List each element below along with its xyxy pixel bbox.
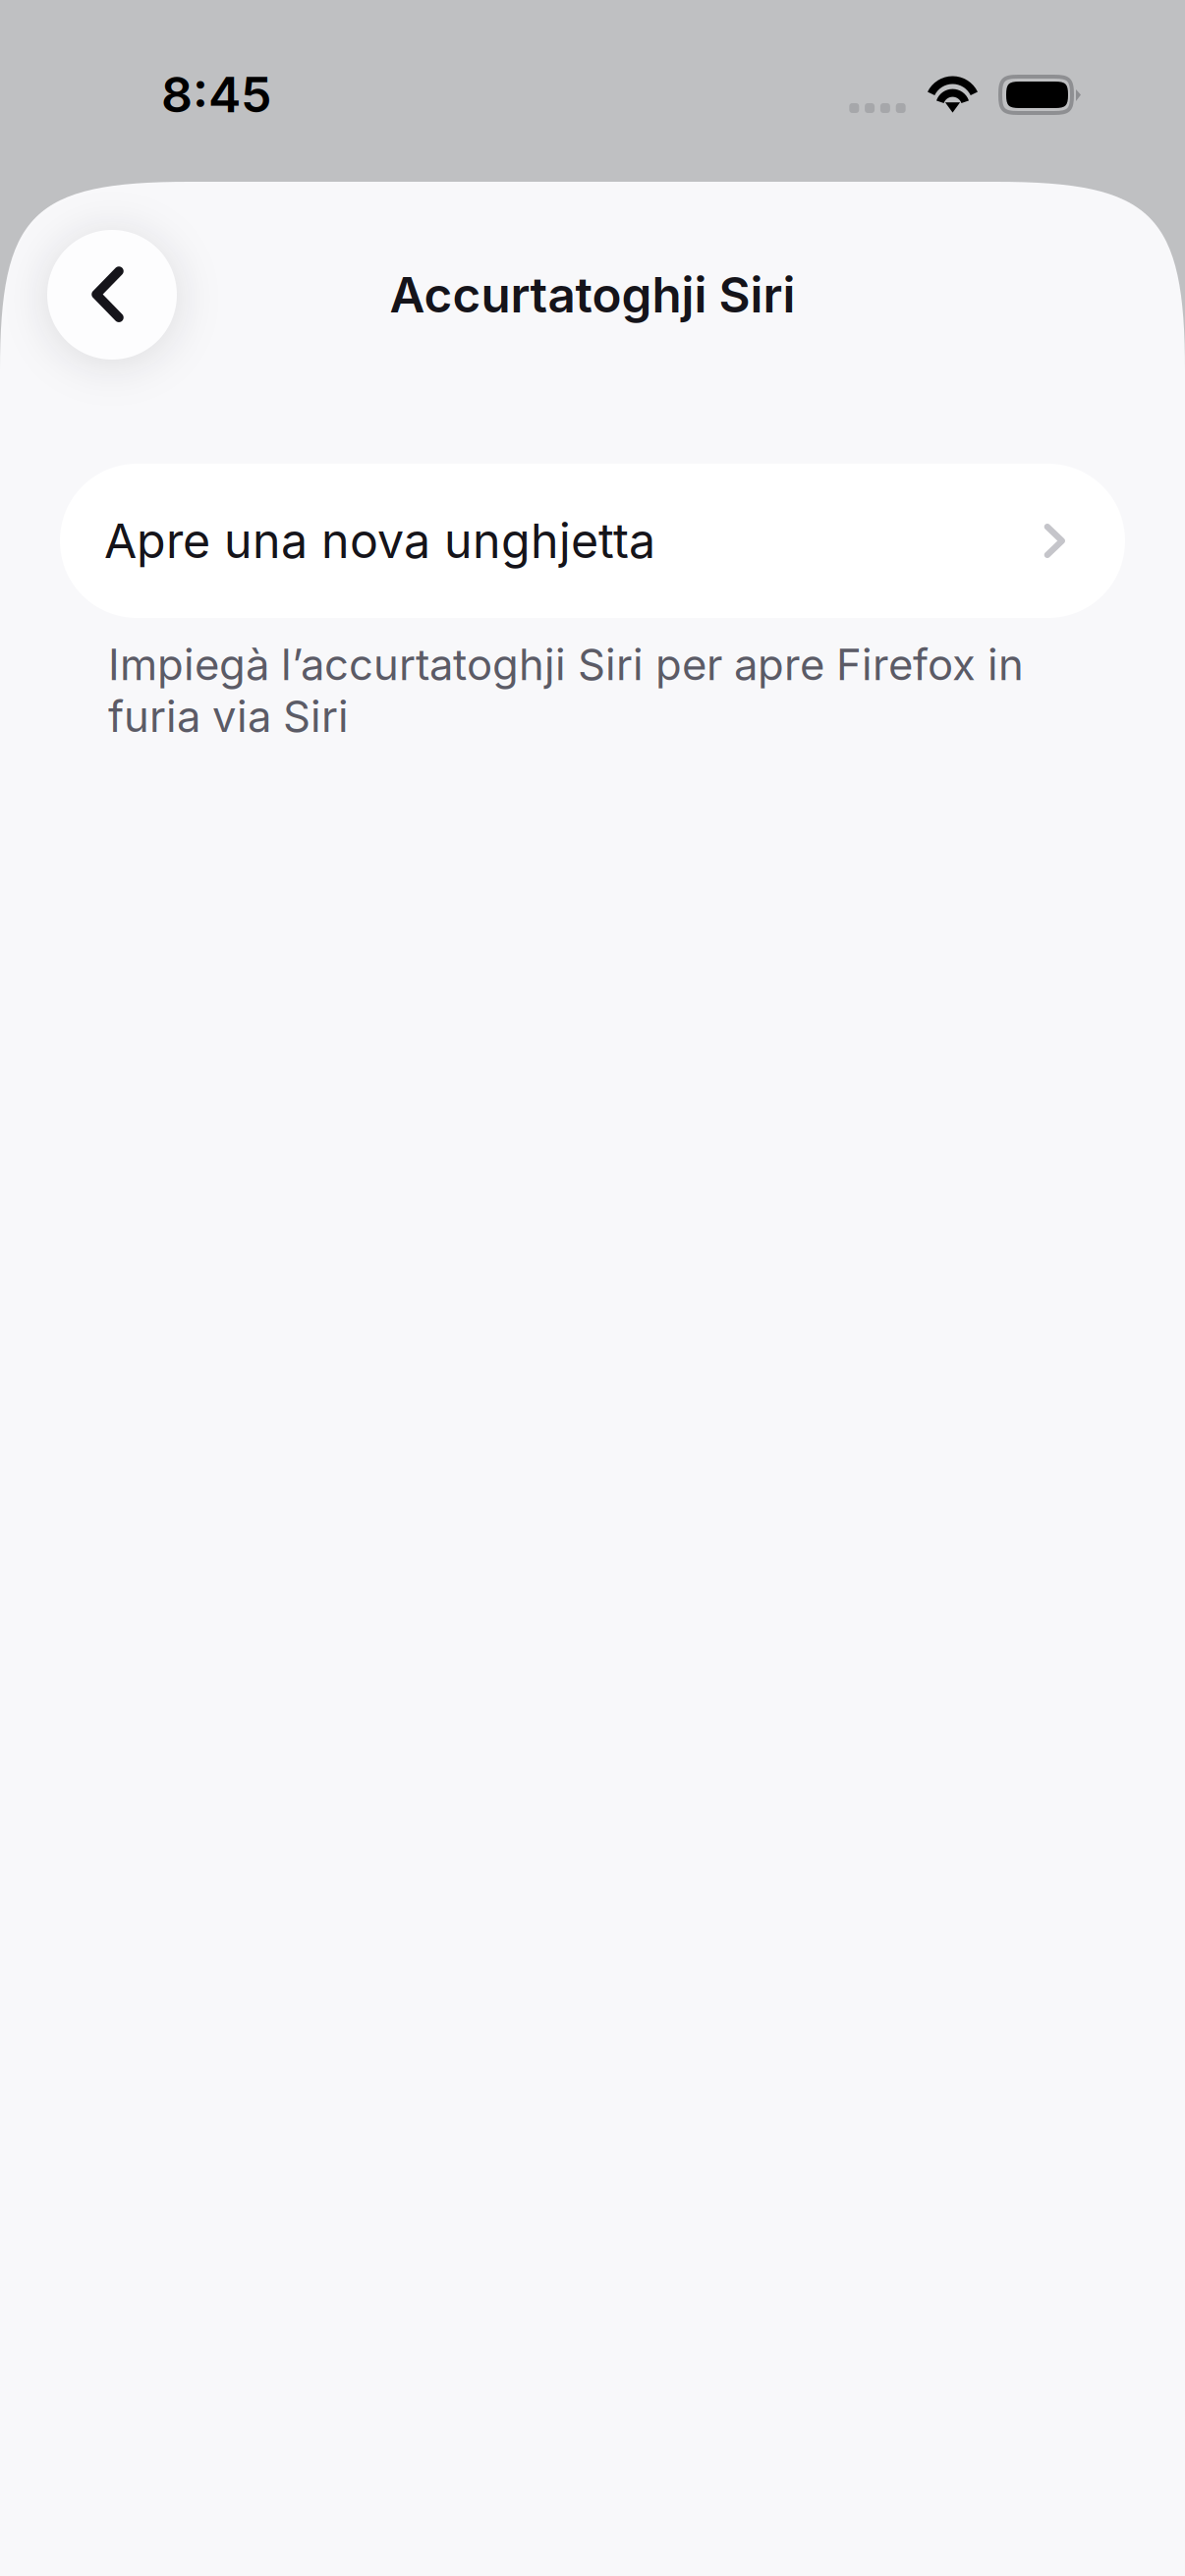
staticText: Accurtatoghji Siri (390, 265, 795, 324)
staticText: 8:45 (161, 65, 271, 124)
button[interactable]: Back (47, 230, 177, 360)
staticText: Impiegà l’accurtatoghji Siri per apre Fi… (108, 639, 1024, 742)
staticText: Apre una nova unghjetta (104, 512, 655, 570)
button[interactable]: Apre una nova unghjetta (60, 464, 1125, 618)
